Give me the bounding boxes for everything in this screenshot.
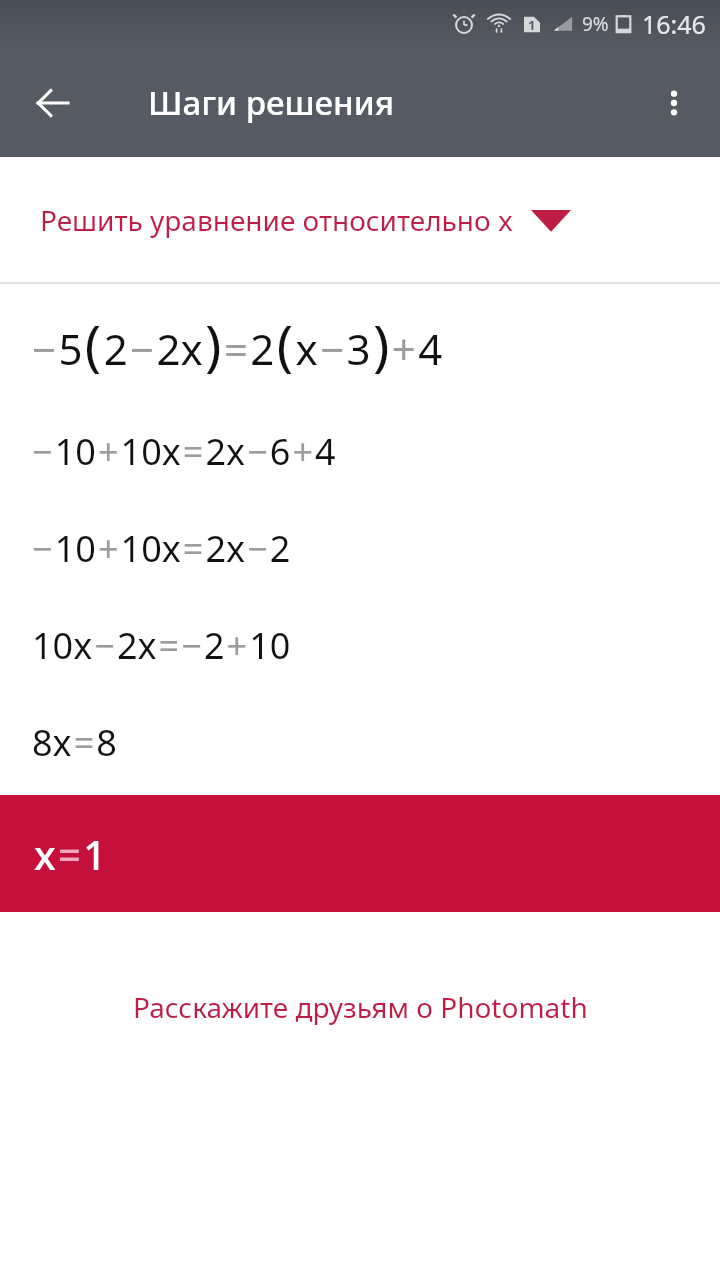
- staticText: − 5 ( 2 − 2x ) = 2 ( x − 3 ) + 4: [32, 307, 443, 381]
- button[interactable]: x = 1: [0, 795, 720, 912]
- staticText: 10x − 2x = − 2 + 10: [32, 621, 291, 670]
- staticText: 8x = 8: [32, 718, 117, 767]
- button[interactable]: Расскажите друзьям о Photomath: [0, 978, 720, 1036]
- staticText: Решить уравнение относительно x: [40, 201, 513, 239]
- staticText: − 10 + 10x = 2x − 6 + 4: [32, 427, 336, 476]
- staticText: 1: [528, 16, 536, 34]
- button[interactable]: More options: [646, 75, 702, 131]
- staticText: 16:46: [642, 7, 706, 41]
- staticText: Шаги решения: [148, 80, 395, 125]
- button[interactable]: Back: [22, 72, 84, 134]
- staticText: 9%: [582, 11, 609, 37]
- staticText: x = 1: [34, 827, 107, 881]
- staticText: − 10 + 10x = 2x − 2: [32, 524, 291, 573]
- button[interactable]: Решить уравнение относительно x: [0, 157, 720, 282]
- staticText: Расскажите друзьям о Photomath: [133, 988, 588, 1026]
